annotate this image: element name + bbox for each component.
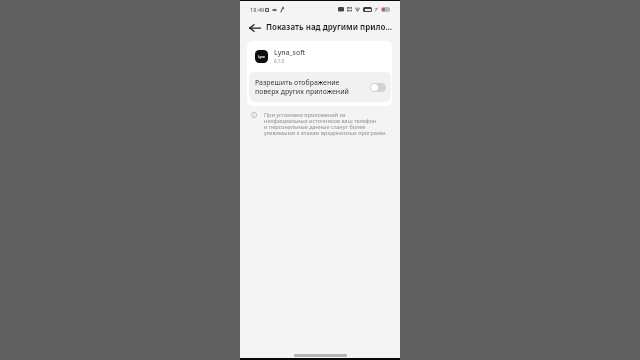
staticText: Lyna (258, 55, 265, 59)
staticText: При установке приложений из неофициальны… (264, 111, 387, 137)
staticText: Показать над другими прило… (266, 22, 393, 33)
button[interactable]: Back (248, 21, 262, 35)
button[interactable]: Разрешить отображение поверх других прил… (249, 72, 391, 102)
staticText: 0.1.0 (274, 58, 285, 64)
staticText: Lyna_soft (274, 48, 306, 57)
staticText: Разрешить отображение поверх других прил… (255, 78, 367, 96)
staticText: 18:49 (250, 6, 265, 14)
